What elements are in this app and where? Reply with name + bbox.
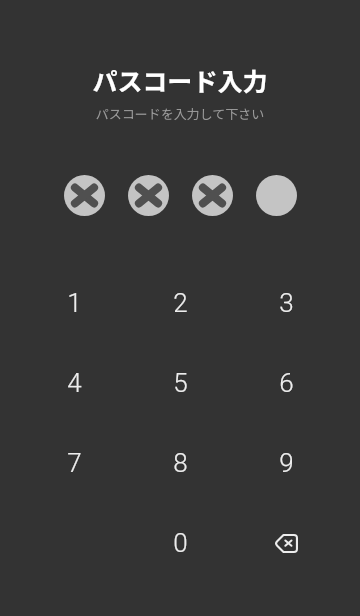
button[interactable]: Backspace [233, 503, 339, 583]
staticText: 1 [67, 288, 82, 318]
staticText: 8 [173, 448, 188, 478]
button[interactable]: 5 [127, 343, 233, 423]
staticText: 5 [173, 368, 188, 398]
button[interactable]: 4 [21, 343, 127, 423]
staticText: 3 [279, 288, 294, 318]
button[interactable]: 7 [21, 423, 127, 503]
button[interactable]: 8 [127, 423, 233, 503]
staticText: パスコードを入力して下さい [0, 104, 360, 123]
staticText: 0 [173, 528, 188, 558]
button[interactable]: 3 [233, 263, 339, 343]
staticText: 4 [67, 368, 82, 398]
button[interactable]: 2 [127, 263, 233, 343]
staticText: 6 [279, 368, 294, 398]
button[interactable]: 6 [233, 343, 339, 423]
button[interactable]: 9 [233, 423, 339, 503]
button[interactable]: 0 [127, 503, 233, 583]
staticText: 2 [173, 288, 188, 318]
button[interactable]: 1 [21, 263, 127, 343]
staticText: 9 [279, 448, 294, 478]
staticText: 7 [67, 448, 82, 478]
staticText: パスコード入力 [0, 62, 360, 98]
